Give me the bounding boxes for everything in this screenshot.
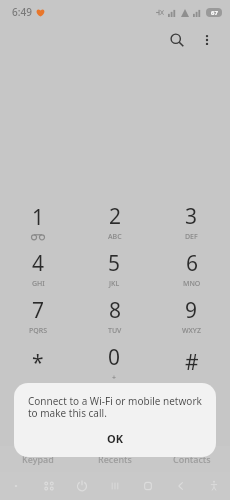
button[interactable]: 9 <box>153 292 230 339</box>
button[interactable]: 2 <box>76 198 153 245</box>
button[interactable]: 8 <box>76 292 153 339</box>
button[interactable]: Recents <box>76 446 153 472</box>
button[interactable]: Search <box>162 25 192 55</box>
staticText: GHI <box>32 279 45 289</box>
staticText: 5 <box>108 249 121 278</box>
staticText: 6:49 <box>12 5 32 19</box>
button[interactable]: OK <box>14 425 216 451</box>
staticText: 2 <box>109 202 122 231</box>
staticText: Contacts <box>173 453 211 465</box>
button[interactable]: 6 <box>153 245 230 292</box>
button[interactable]: 3 <box>153 198 230 245</box>
staticText: TUV <box>108 326 122 336</box>
staticText: 0 <box>108 343 121 372</box>
button[interactable]: Keypad <box>0 446 76 472</box>
staticText: + <box>112 373 117 383</box>
button[interactable]: * <box>0 339 76 386</box>
staticText: 3 <box>185 202 198 231</box>
button[interactable]: 4 <box>0 245 76 292</box>
button[interactable]: 5 <box>76 245 153 292</box>
staticText: 7 <box>32 296 45 325</box>
staticText: WXYZ <box>182 326 201 336</box>
staticText: 8 <box>109 296 122 325</box>
staticText: MNO <box>183 279 201 289</box>
button[interactable]: More options <box>192 25 222 55</box>
staticText: DEF <box>185 232 198 242</box>
staticText: OK <box>107 431 124 446</box>
staticText: 1 <box>32 203 45 232</box>
staticText: 4 <box>32 249 45 278</box>
staticText: ABC <box>108 232 122 242</box>
button[interactable]: 0 <box>76 339 153 386</box>
button[interactable]: Screenshot <box>32 472 65 500</box>
staticText: 9 <box>185 296 198 325</box>
staticText: JKL <box>109 279 120 289</box>
button[interactable]: 7 <box>0 292 76 339</box>
staticText: Recents <box>98 453 132 465</box>
staticText: PQRS <box>29 326 48 336</box>
button[interactable]: 1 <box>0 198 76 245</box>
staticText: 67 <box>211 9 218 17</box>
staticText: 6 <box>186 249 199 278</box>
staticText: # <box>185 348 199 377</box>
button[interactable]: Contacts <box>153 446 230 472</box>
staticText: * <box>32 348 44 377</box>
staticText: Connect to a Wi-Fi or mobile network to … <box>28 394 202 420</box>
staticText: Keypad <box>22 453 54 465</box>
button[interactable]: # <box>153 339 230 386</box>
